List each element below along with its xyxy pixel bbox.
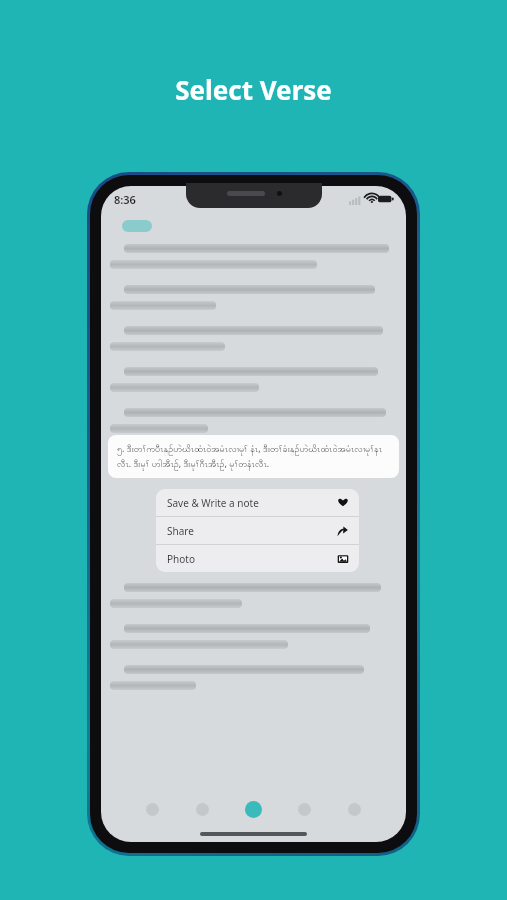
staticText: Share bbox=[167, 524, 194, 538]
staticText: ၅. ဒီးတၢ်ကပီၤန္ဥ်ဟဲဃိၤထံၤဝဲအမံၤလၢမုၢ် နံ… bbox=[117, 442, 390, 471]
button[interactable]: Photo bbox=[156, 545, 359, 572]
button[interactable]: Save & Write a note bbox=[156, 489, 359, 516]
button[interactable]: Share bbox=[156, 517, 359, 544]
other: Save and write a note bbox=[337, 497, 349, 509]
staticText: Save & Write a note bbox=[167, 496, 259, 510]
staticText: Select Verse bbox=[175, 72, 332, 107]
staticText: Photo bbox=[167, 552, 195, 566]
button[interactable]: ၅. ဒီးတၢ်ကပီၤန္ဥ်ဟဲဃိၤထံၤဝဲအမံၤလၢမုၢ် နံ… bbox=[108, 435, 399, 478]
other: Share bbox=[337, 525, 349, 537]
other: Photo bbox=[337, 553, 349, 565]
staticText: 8:36 bbox=[114, 192, 136, 207]
